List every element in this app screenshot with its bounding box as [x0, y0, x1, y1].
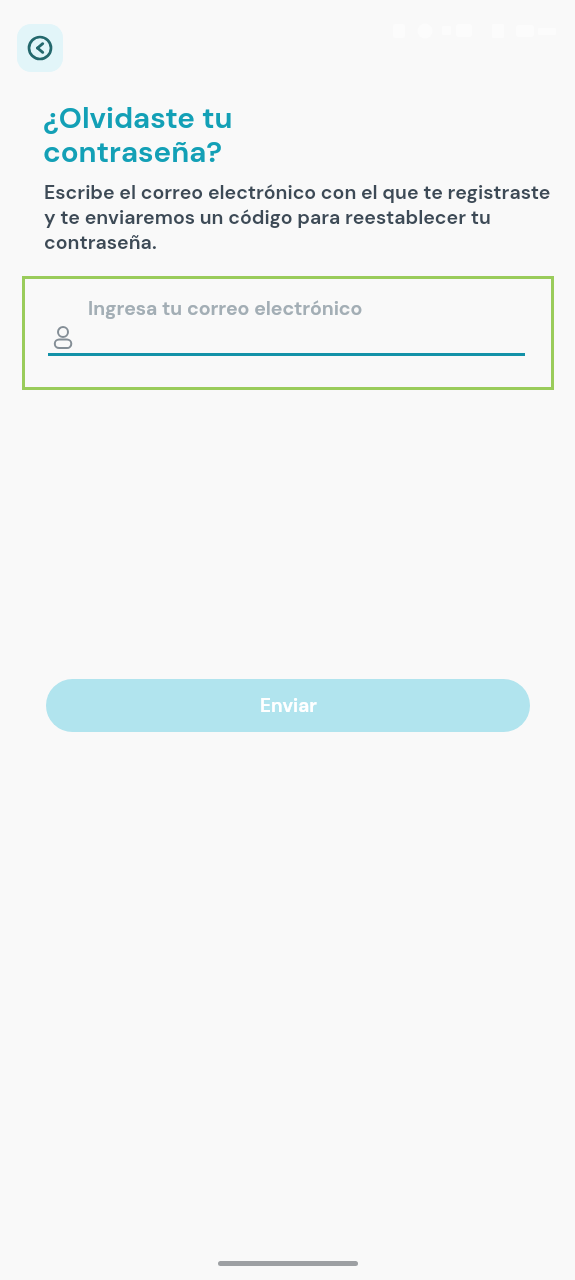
button[interactable]: Back: [17, 24, 63, 72]
staticText: Enviar: [260, 693, 317, 718]
staticText: ¿Olvidaste tu contraseña?: [43, 99, 233, 171]
button[interactable]: Enviar: [46, 679, 530, 732]
staticText: Escribe el correo electrónico con el que…: [44, 180, 551, 255]
staticText: Ingresa tu correo electrónico: [88, 296, 363, 321]
button[interactable]: Ingresa tu correo electrónico: [22, 276, 554, 390]
